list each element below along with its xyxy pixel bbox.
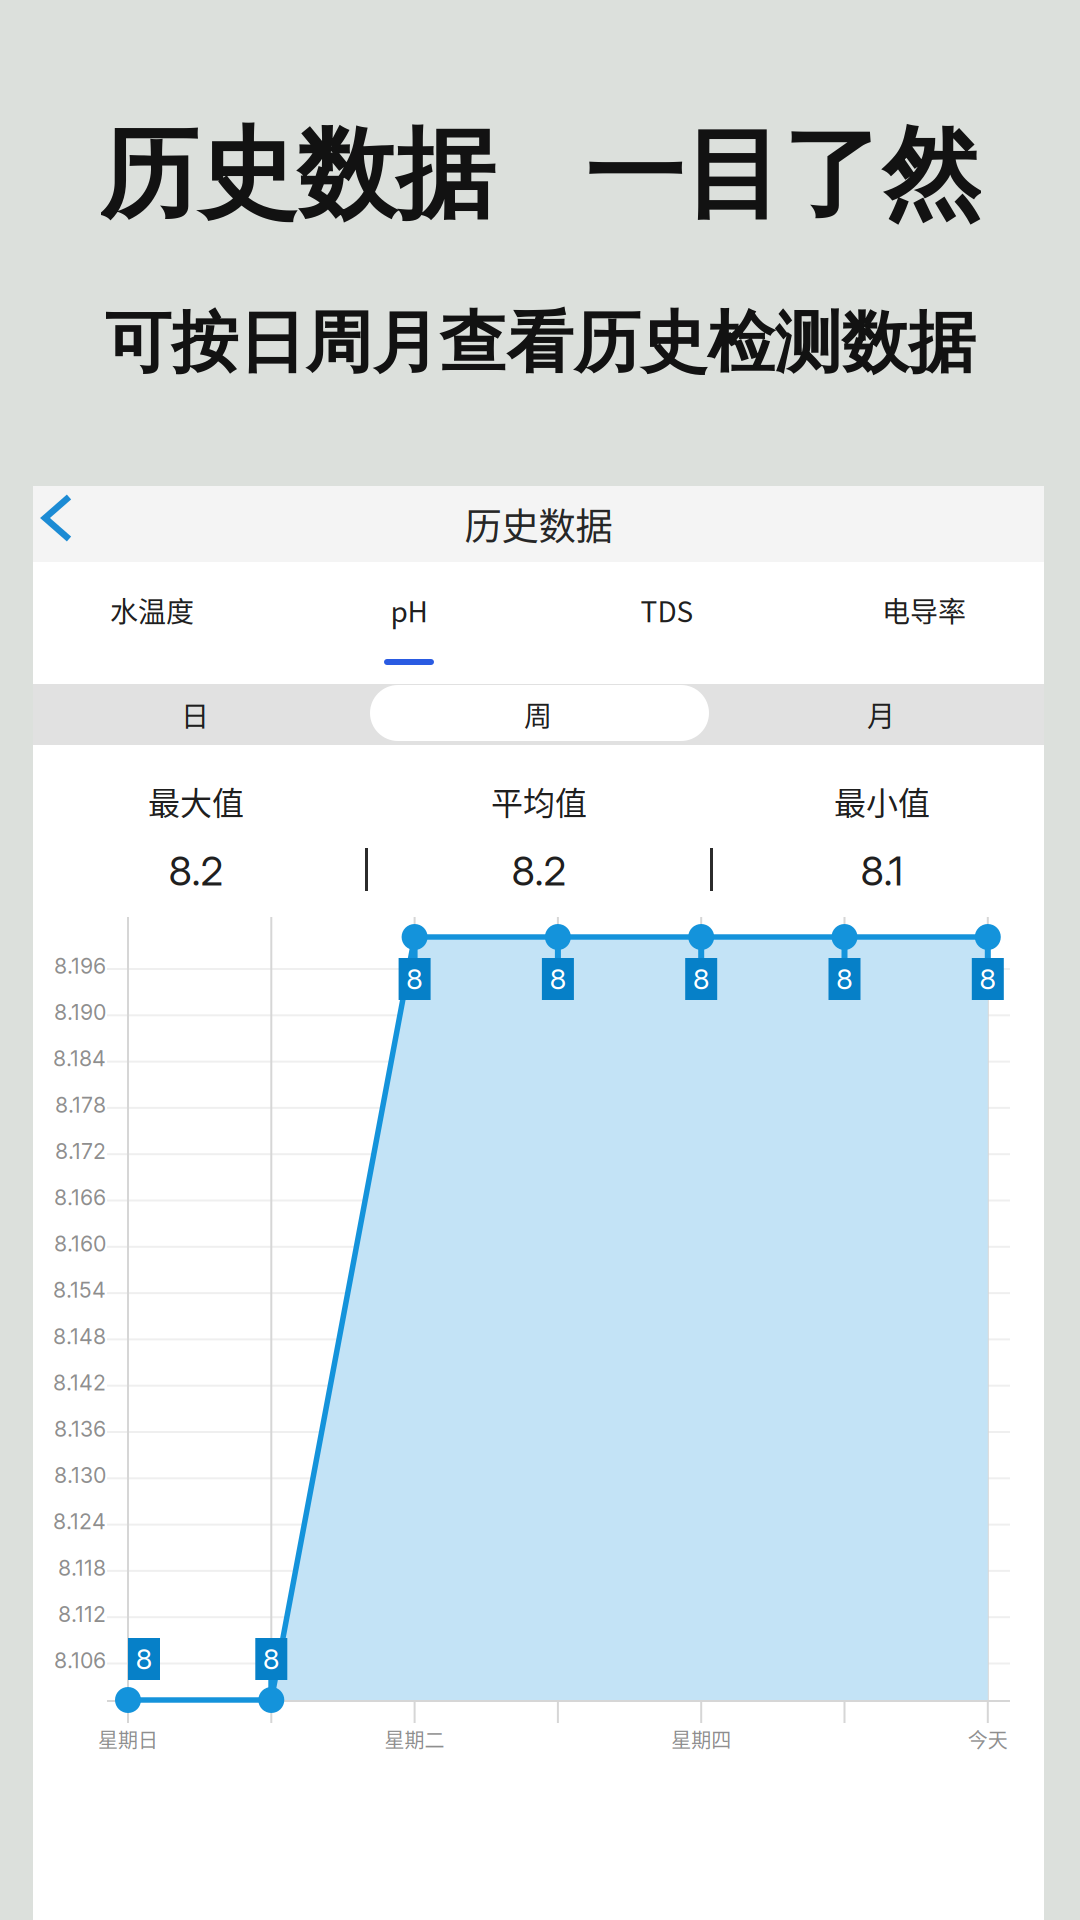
- staticText: 星期日: [98, 1724, 158, 1753]
- staticText: 8: [693, 962, 710, 996]
- staticText: 8.2: [168, 847, 223, 895]
- staticText: 8.142: [53, 1370, 106, 1396]
- button[interactable]: TDS: [547, 562, 787, 684]
- button[interactable]: 水温度: [32, 562, 272, 684]
- staticText: 8: [836, 962, 853, 996]
- staticText: 8.166: [54, 1185, 106, 1210]
- staticText: 今天: [968, 1724, 1008, 1753]
- staticText: 星期四: [671, 1724, 731, 1753]
- staticText: 8.1: [860, 847, 903, 895]
- staticText: 月: [867, 694, 895, 735]
- staticText: 8.160: [54, 1231, 106, 1257]
- staticText: 8: [263, 1642, 280, 1676]
- button[interactable]: 月: [712, 684, 1049, 745]
- staticText: 8.136: [54, 1416, 106, 1442]
- staticText: 水温度: [110, 590, 194, 630]
- staticText: pH: [390, 590, 427, 630]
- staticText: 8.172: [55, 1138, 106, 1164]
- staticText: 8: [135, 1642, 152, 1676]
- button[interactable]: 电导率: [804, 562, 1044, 684]
- staticText: 8.106: [54, 1648, 106, 1673]
- staticText: 8: [406, 962, 423, 996]
- staticText: 电导率: [882, 590, 966, 630]
- staticText: 8.190: [54, 999, 106, 1025]
- staticText: 8.112: [58, 1601, 106, 1627]
- button[interactable]: 周: [369, 684, 706, 745]
- staticText: 8: [549, 962, 566, 996]
- staticText: 日: [181, 694, 209, 735]
- staticText: 8.124: [53, 1509, 106, 1534]
- staticText: 8.184: [53, 1046, 106, 1071]
- staticText: 最小值: [834, 778, 930, 824]
- staticText: 周: [524, 694, 552, 735]
- button[interactable]: pH: [289, 562, 529, 684]
- staticText: TDS: [640, 590, 693, 630]
- staticText: 8.118: [58, 1555, 106, 1581]
- staticText: 8.154: [53, 1277, 106, 1303]
- staticText: 最大值: [148, 778, 244, 824]
- staticText: 平均值: [491, 778, 587, 824]
- staticText: 8.148: [53, 1323, 106, 1349]
- staticText: 历史数据 一目了然: [99, 113, 981, 237]
- staticText: 8: [979, 962, 996, 996]
- button[interactable]: Back: [22, 480, 92, 556]
- staticText: 8.178: [55, 1092, 106, 1118]
- staticText: 星期二: [385, 1724, 445, 1753]
- staticText: 8.196: [54, 953, 106, 979]
- staticText: 8.130: [54, 1462, 106, 1488]
- staticText: 历史数据: [464, 497, 612, 551]
- staticText: 8.2: [511, 847, 566, 895]
- button[interactable]: 日: [26, 684, 363, 745]
- staticText: 可按日周月查看历史检测数据: [104, 301, 975, 385]
